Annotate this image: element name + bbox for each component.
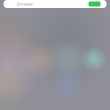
- staticText: Simulator: [16, 1, 33, 7]
